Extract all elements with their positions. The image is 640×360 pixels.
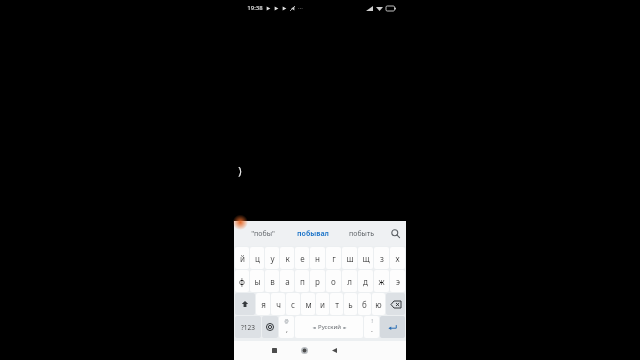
- button[interactable]: @: [279, 316, 294, 338]
- staticText: ц: [255, 253, 260, 264]
- staticText: я: [261, 299, 266, 310]
- button[interactable]: Enter: [380, 316, 405, 338]
- staticText: побывал: [297, 229, 329, 239]
- button[interactable]: б: [358, 293, 371, 315]
- button[interactable]: ф: [235, 270, 249, 292]
- button[interactable]: Recents: [259, 341, 289, 360]
- button[interactable]: ◄: [295, 316, 363, 338]
- staticText: ч: [276, 299, 281, 310]
- button[interactable]: т: [330, 293, 343, 315]
- staticText: @: [284, 318, 289, 324]
- button[interactable]: я: [256, 293, 270, 315]
- staticText: с: [291, 299, 295, 310]
- staticText: и: [320, 299, 325, 310]
- button[interactable]: ю: [372, 293, 385, 315]
- staticText: н: [315, 253, 320, 264]
- button[interactable]: ч: [271, 293, 285, 315]
- staticText: ,: [286, 325, 288, 335]
- button[interactable]: ь: [344, 293, 357, 315]
- staticText: ···: [298, 4, 303, 12]
- button[interactable]: Search: [386, 221, 404, 246]
- staticText: Русский: [318, 323, 341, 331]
- staticText: х: [395, 253, 400, 264]
- button[interactable]: н: [310, 247, 325, 269]
- button[interactable]: у: [265, 247, 279, 269]
- staticText: ►: [343, 325, 347, 330]
- button[interactable]: д: [358, 270, 373, 292]
- button[interactable]: й: [235, 247, 249, 269]
- button[interactable]: л: [342, 270, 357, 292]
- button[interactable]: э: [390, 270, 405, 292]
- button[interactable]: ц: [250, 247, 264, 269]
- button[interactable]: щ: [358, 247, 373, 269]
- button[interactable]: ж: [374, 270, 389, 292]
- button[interactable]: Back: [319, 341, 349, 360]
- button[interactable]: в: [265, 270, 279, 292]
- button[interactable]: р: [310, 270, 325, 292]
- staticText: 19:38: [247, 4, 263, 12]
- button[interactable]: ш: [342, 247, 357, 269]
- staticText: побыть: [349, 229, 374, 239]
- button[interactable]: м: [301, 293, 315, 315]
- button[interactable]: ?123: [235, 316, 261, 338]
- button[interactable]: Home: [289, 341, 319, 360]
- button[interactable]: г: [326, 247, 341, 269]
- staticText: о: [331, 276, 336, 287]
- staticText: ): [238, 163, 242, 178]
- staticText: е: [300, 253, 305, 264]
- staticText: й: [240, 253, 245, 264]
- staticText: у: [270, 253, 275, 264]
- button[interactable]: побыть: [337, 221, 386, 246]
- staticText: к: [285, 253, 290, 264]
- staticText: ж: [378, 276, 385, 287]
- staticText: э: [396, 276, 400, 287]
- staticText: ю: [375, 299, 382, 310]
- staticText: ◄: [312, 325, 316, 330]
- staticText: м: [305, 299, 312, 310]
- staticText: .: [371, 325, 373, 335]
- button[interactable]: к: [280, 247, 294, 269]
- staticText: з: [380, 253, 384, 264]
- staticText: ь: [348, 299, 353, 310]
- staticText: "побы": [251, 229, 275, 239]
- button[interactable]: з: [374, 247, 389, 269]
- staticText: б: [362, 299, 367, 310]
- button[interactable]: о: [326, 270, 341, 292]
- button[interactable]: ы: [250, 270, 264, 292]
- staticText: д: [363, 276, 368, 287]
- button[interactable]: Emoji: [262, 316, 278, 338]
- button[interactable]: е: [295, 247, 309, 269]
- staticText: г: [332, 253, 336, 264]
- staticText: т: [335, 299, 339, 310]
- button[interactable]: Backspace: [386, 293, 405, 315]
- button[interactable]: п: [295, 270, 309, 292]
- staticText: ф: [239, 276, 245, 287]
- staticText: л: [347, 276, 352, 287]
- button[interactable]: х: [390, 247, 405, 269]
- staticText: ш: [346, 253, 354, 264]
- staticText: ы: [254, 276, 261, 287]
- button[interactable]: "побы": [238, 221, 288, 246]
- button[interactable]: !: [364, 316, 379, 338]
- button[interactable]: с: [286, 293, 300, 315]
- staticText: а: [285, 276, 290, 287]
- staticText: щ: [362, 253, 370, 264]
- staticText: п: [300, 276, 305, 287]
- button[interactable]: Shift: [235, 293, 255, 315]
- button[interactable]: а: [280, 270, 294, 292]
- button[interactable]: побывал: [288, 221, 337, 246]
- button[interactable]: и: [316, 293, 329, 315]
- staticText: р: [315, 276, 320, 287]
- staticText: в: [270, 276, 275, 287]
- staticText: ?123: [241, 323, 255, 332]
- staticText: !: [371, 318, 373, 324]
